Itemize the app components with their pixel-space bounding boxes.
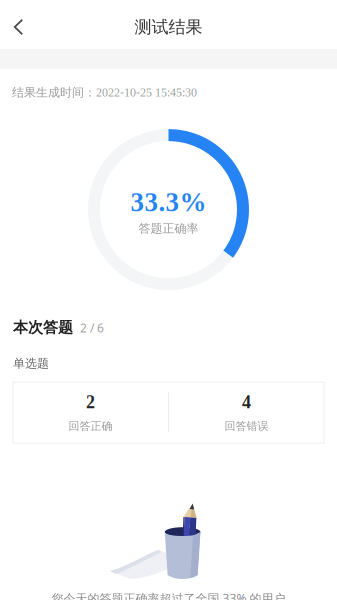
staticText: 结果生成时间： <box>12 85 96 100</box>
staticText: 2022-10-25 15:45:30 <box>96 86 197 99</box>
staticText: 4 <box>242 392 251 412</box>
staticText: 测试结果 <box>134 16 202 38</box>
staticText: 2 / 6 <box>80 320 104 336</box>
staticText: 33.3% <box>130 187 206 217</box>
staticText: 回答错误 <box>224 419 268 433</box>
staticText: 答题正确率 <box>138 221 198 236</box>
staticText: 回答正确 <box>68 419 112 433</box>
staticText: 本次答题 <box>13 318 73 337</box>
staticText: 单选题 <box>13 356 49 371</box>
staticText: 您今天的答题正确率超过了全国 33% 的用户 <box>51 590 285 600</box>
button[interactable]: 返回 <box>0 5 37 49</box>
staticText: 2 <box>86 392 95 412</box>
